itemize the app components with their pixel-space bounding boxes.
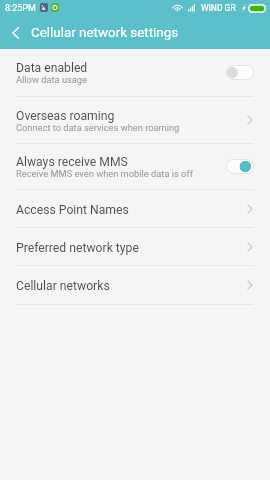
staticText: Cellular network settings	[31, 25, 179, 41]
staticText: Access Point Names	[16, 203, 129, 217]
button[interactable]: Always receive MMS	[0, 144, 270, 189]
button[interactable]: Back	[0, 16, 31, 49]
staticText: Allow data usage	[16, 74, 88, 85]
staticText: Connect to data services when roaming	[16, 122, 180, 133]
button[interactable]: Access Point Names	[0, 190, 270, 227]
staticText: Cellular networks	[16, 279, 110, 293]
staticText: Overseas roaming	[16, 109, 115, 123]
staticText: 8:25PM	[5, 3, 36, 14]
button[interactable]: Data enabled	[0, 49, 270, 96]
staticText: Always receive MMS	[16, 155, 128, 169]
button[interactable]: Preferred network type	[0, 228, 270, 265]
button[interactable]: Cellular networks	[0, 266, 270, 304]
button[interactable]: Overseas roaming	[0, 97, 270, 143]
staticText: Data enabled	[16, 61, 88, 75]
staticText: WIND GR	[201, 3, 236, 13]
staticText: Preferred network type	[16, 241, 139, 255]
staticText: Receive MMS even when mobile data is off	[16, 168, 193, 179]
